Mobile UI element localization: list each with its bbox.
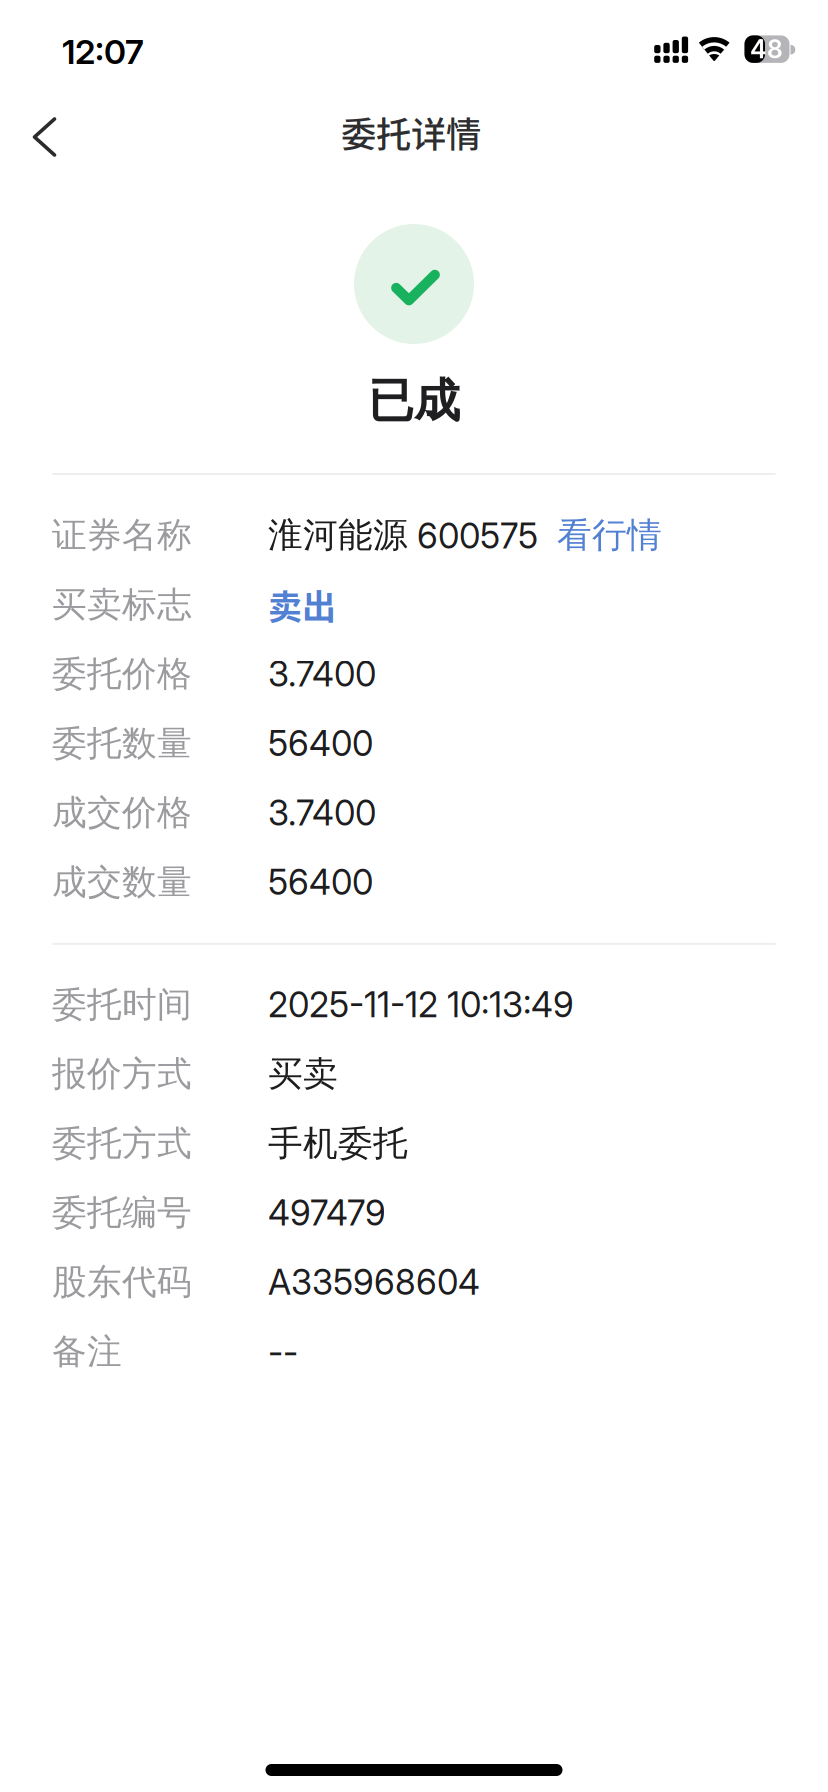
staticText: 卖出 <box>268 580 336 629</box>
staticText: 买卖标志 <box>52 583 192 626</box>
staticText: 2025-11-12 10:13:49 <box>268 984 574 1025</box>
staticText: 3.7400 <box>268 653 376 695</box>
staticText: A335968604 <box>268 1261 480 1303</box>
staticText: 497479 <box>268 1192 386 1234</box>
staticText: -- <box>268 1331 298 1372</box>
staticText: 56400 <box>268 861 373 903</box>
staticText: 12:07 <box>62 31 144 72</box>
staticText: 48 <box>750 34 783 64</box>
staticText: 委托编号 <box>52 1191 192 1235</box>
staticText: 委托方式 <box>52 1122 192 1165</box>
staticText: 备注 <box>52 1330 122 1373</box>
staticText: 委托数量 <box>52 722 192 765</box>
staticText: 委托详情 <box>341 106 481 158</box>
staticText: 3.7400 <box>268 792 376 834</box>
staticText: 买卖 <box>268 1052 338 1096</box>
staticText: 报价方式 <box>52 1052 192 1096</box>
staticText: 股东代码 <box>52 1260 192 1304</box>
staticText: 已成 <box>368 372 460 430</box>
staticText: 看行情 <box>557 513 662 557</box>
staticText: 56400 <box>268 722 373 764</box>
staticText: 成交价格 <box>52 791 192 835</box>
staticText: 证券名称 <box>52 513 192 557</box>
staticText: 委托时间 <box>52 983 192 1026</box>
staticText: 委托价格 <box>52 652 192 696</box>
button[interactable]: 看行情 <box>538 504 667 566</box>
staticText: 手机委托 <box>268 1122 408 1165</box>
staticText: 成交数量 <box>52 860 192 904</box>
staticText: 淮河能源 600575 <box>268 513 538 557</box>
button[interactable]: Back <box>21 106 87 172</box>
